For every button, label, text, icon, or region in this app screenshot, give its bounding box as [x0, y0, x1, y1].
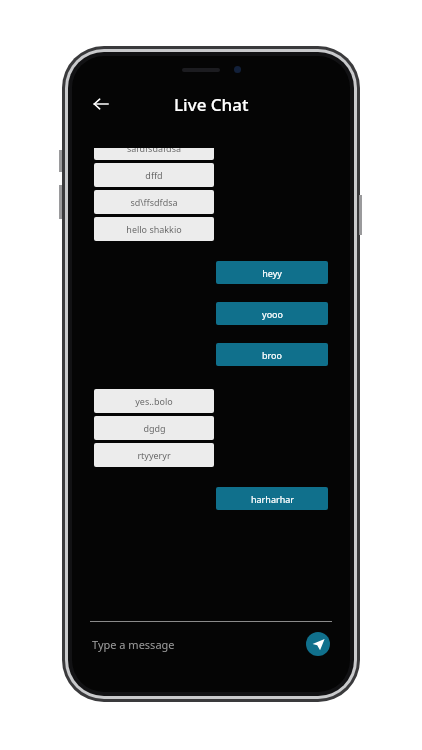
staticText: rtyyeryr	[137, 449, 171, 461]
staticText: yes..bolo	[135, 395, 173, 407]
staticText: harharhar	[251, 493, 294, 505]
staticText: dgdg	[143, 422, 166, 434]
staticText: Live Chat	[174, 93, 249, 116]
button[interactable]: Back	[86, 89, 116, 119]
staticText: hello shakkio	[126, 223, 182, 235]
staticText: broo	[262, 349, 282, 361]
button[interactable]: dgdg	[94, 416, 214, 440]
button[interactable]: dffd	[94, 163, 214, 187]
button[interactable]: heyy	[216, 261, 328, 284]
button[interactable]: safdfsdafdsa	[94, 148, 214, 160]
staticText: sd\ffsdfdsa	[130, 196, 178, 208]
button[interactable]: Send	[306, 632, 330, 656]
staticText: yooo	[262, 308, 283, 320]
button[interactable]: Type a message	[92, 622, 306, 666]
staticText: heyy	[262, 267, 282, 279]
staticText: safdfsdafdsa	[127, 148, 181, 154]
button[interactable]: sd\ffsdfdsa	[94, 190, 214, 214]
button[interactable]: hello shakkio	[94, 217, 214, 241]
button[interactable]: rtyyeryr	[94, 443, 214, 467]
staticText: Type a message	[92, 637, 175, 652]
button[interactable]: yooo	[216, 302, 328, 325]
button[interactable]: harharhar	[216, 487, 328, 510]
button[interactable]: yes..bolo	[94, 389, 214, 413]
staticText: dffd	[145, 169, 163, 181]
button[interactable]: broo	[216, 343, 328, 366]
